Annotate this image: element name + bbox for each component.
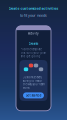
staticText: Create	[28, 41, 38, 46]
staticText: Activity	[28, 31, 39, 35]
staticText: Customize every activity to match the wa…	[22, 76, 44, 89]
staticText: to fit your needs	[20, 13, 47, 18]
staticText: Create customized activities	[8, 6, 58, 11]
staticText: Get started	[25, 93, 41, 97]
staticText: Pick the template that suits your plan a…	[20, 48, 46, 58]
button[interactable]: Get started	[23, 92, 44, 98]
